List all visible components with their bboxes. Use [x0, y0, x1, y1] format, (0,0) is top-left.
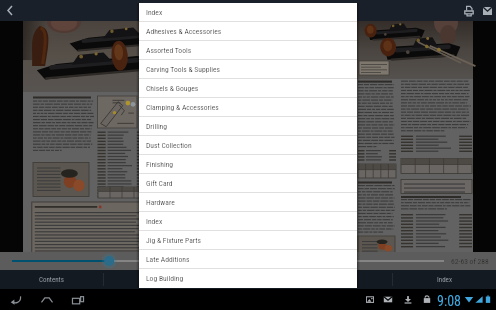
- button[interactable]: Recent apps: [69, 291, 87, 309]
- staticText: Index: [437, 276, 452, 284]
- staticText: 62-63 of 288: [451, 257, 489, 266]
- staticText: Index: [146, 217, 163, 226]
- button[interactable]: Late Additions: [139, 250, 357, 268]
- staticText: Carving Tools & Supplies: [146, 65, 220, 74]
- staticText: Finishing: [146, 160, 174, 169]
- staticText: Log Building: [146, 274, 184, 283]
- button[interactable]: Log Building: [139, 269, 357, 287]
- button[interactable]: Clamping & Accessories: [139, 98, 357, 116]
- staticText: Gift Card: [146, 179, 173, 188]
- button[interactable]: Email: [477, 0, 496, 21]
- button[interactable]: Hardware: [139, 193, 357, 211]
- staticText: Drilling: [146, 122, 168, 131]
- staticText: Jig & Fixture Parts: [146, 236, 201, 245]
- button[interactable]: Index: [139, 3, 357, 21]
- button[interactable]: Index: [139, 212, 357, 230]
- button[interactable]: Assorted Tools: [139, 41, 357, 59]
- button[interactable]: Contents: [0, 270, 103, 289]
- button[interactable]: Jig & Fixture Parts: [139, 231, 357, 249]
- button[interactable]: Dust Collection: [139, 136, 357, 154]
- button[interactable]: Chisels & Gouges: [139, 79, 357, 97]
- staticText: Adhesives & Accessories: [146, 27, 222, 36]
- staticText: Contents: [39, 276, 64, 284]
- button[interactable]: Home: [38, 291, 56, 309]
- button[interactable]: Finishing: [139, 155, 357, 173]
- staticText: Clamping & Accessories: [146, 103, 219, 112]
- button[interactable]: Print: [455, 0, 477, 21]
- staticText: 9:08: [437, 293, 462, 309]
- staticText: Late Additions: [146, 255, 190, 264]
- button[interactable]: Adhesives & Accessories: [139, 22, 357, 40]
- staticText: Index: [146, 8, 163, 17]
- button[interactable]: Carving Tools & Supplies: [139, 60, 357, 78]
- button[interactable]: Back: [7, 291, 25, 309]
- staticText: Dust Collection: [146, 141, 192, 150]
- button[interactable]: Back: [0, 0, 22, 21]
- staticText: Assorted Tools: [146, 46, 192, 55]
- staticText: Hardware: [146, 198, 175, 207]
- staticText: Chisels & Gouges: [146, 84, 199, 93]
- button[interactable]: Gift Card: [139, 174, 357, 192]
- button[interactable]: Index: [393, 270, 496, 289]
- button[interactable]: Drilling: [139, 117, 357, 135]
